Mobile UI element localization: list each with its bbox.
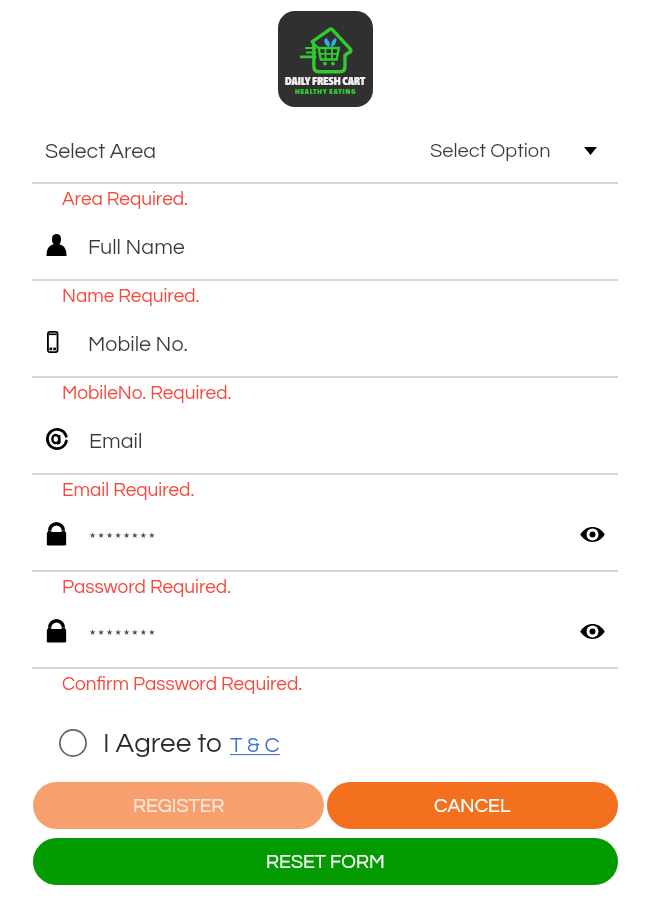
staticText: Select Area <box>45 140 157 162</box>
staticText: Select Option <box>430 141 551 162</box>
button[interactable]: Show password <box>575 614 609 648</box>
staticText: Email <box>89 430 143 452</box>
button[interactable]: Full Name <box>0 223 650 273</box>
staticText: Area Required. <box>62 189 188 209</box>
button[interactable]: I agree to terms and conditions <box>56 718 222 768</box>
staticText: REGISTER <box>133 796 225 816</box>
staticText: MobileNo. Required. <box>62 383 232 403</box>
button[interactable]: Select Area <box>0 126 650 176</box>
button[interactable]: ★★★★★★★★ <box>0 606 650 656</box>
staticText: ★★★★★★★★ <box>89 628 157 637</box>
button[interactable]: REGISTER <box>33 782 324 829</box>
button[interactable]: CANCEL <box>327 782 618 829</box>
staticText: RESET FORM <box>266 852 385 872</box>
staticText: Email Required. <box>62 480 195 500</box>
button[interactable]: Email <box>0 417 650 467</box>
button[interactable]: RESET FORM <box>33 838 618 885</box>
button[interactable]: Daily Fresh Cart logo <box>278 11 373 107</box>
button[interactable]: T & C <box>230 734 280 757</box>
staticText: Password Required. <box>62 577 231 597</box>
staticText: ★★★★★★★★ <box>89 531 157 540</box>
button[interactable]: ★★★★★★★★ <box>0 509 650 559</box>
button[interactable]: Show password <box>575 517 609 551</box>
staticText: Full Name <box>88 236 185 258</box>
button[interactable]: Mobile No. <box>0 320 650 370</box>
staticText: Mobile No. <box>88 333 188 355</box>
staticText: CANCEL <box>434 796 511 816</box>
staticText: I Agree to <box>103 729 222 758</box>
staticText: HEALTHY EATING <box>295 87 357 96</box>
staticText: DAILY FRESH CART <box>285 74 366 88</box>
staticText: Confirm Password Required. <box>62 674 303 694</box>
staticText: Name Required. <box>62 286 200 306</box>
